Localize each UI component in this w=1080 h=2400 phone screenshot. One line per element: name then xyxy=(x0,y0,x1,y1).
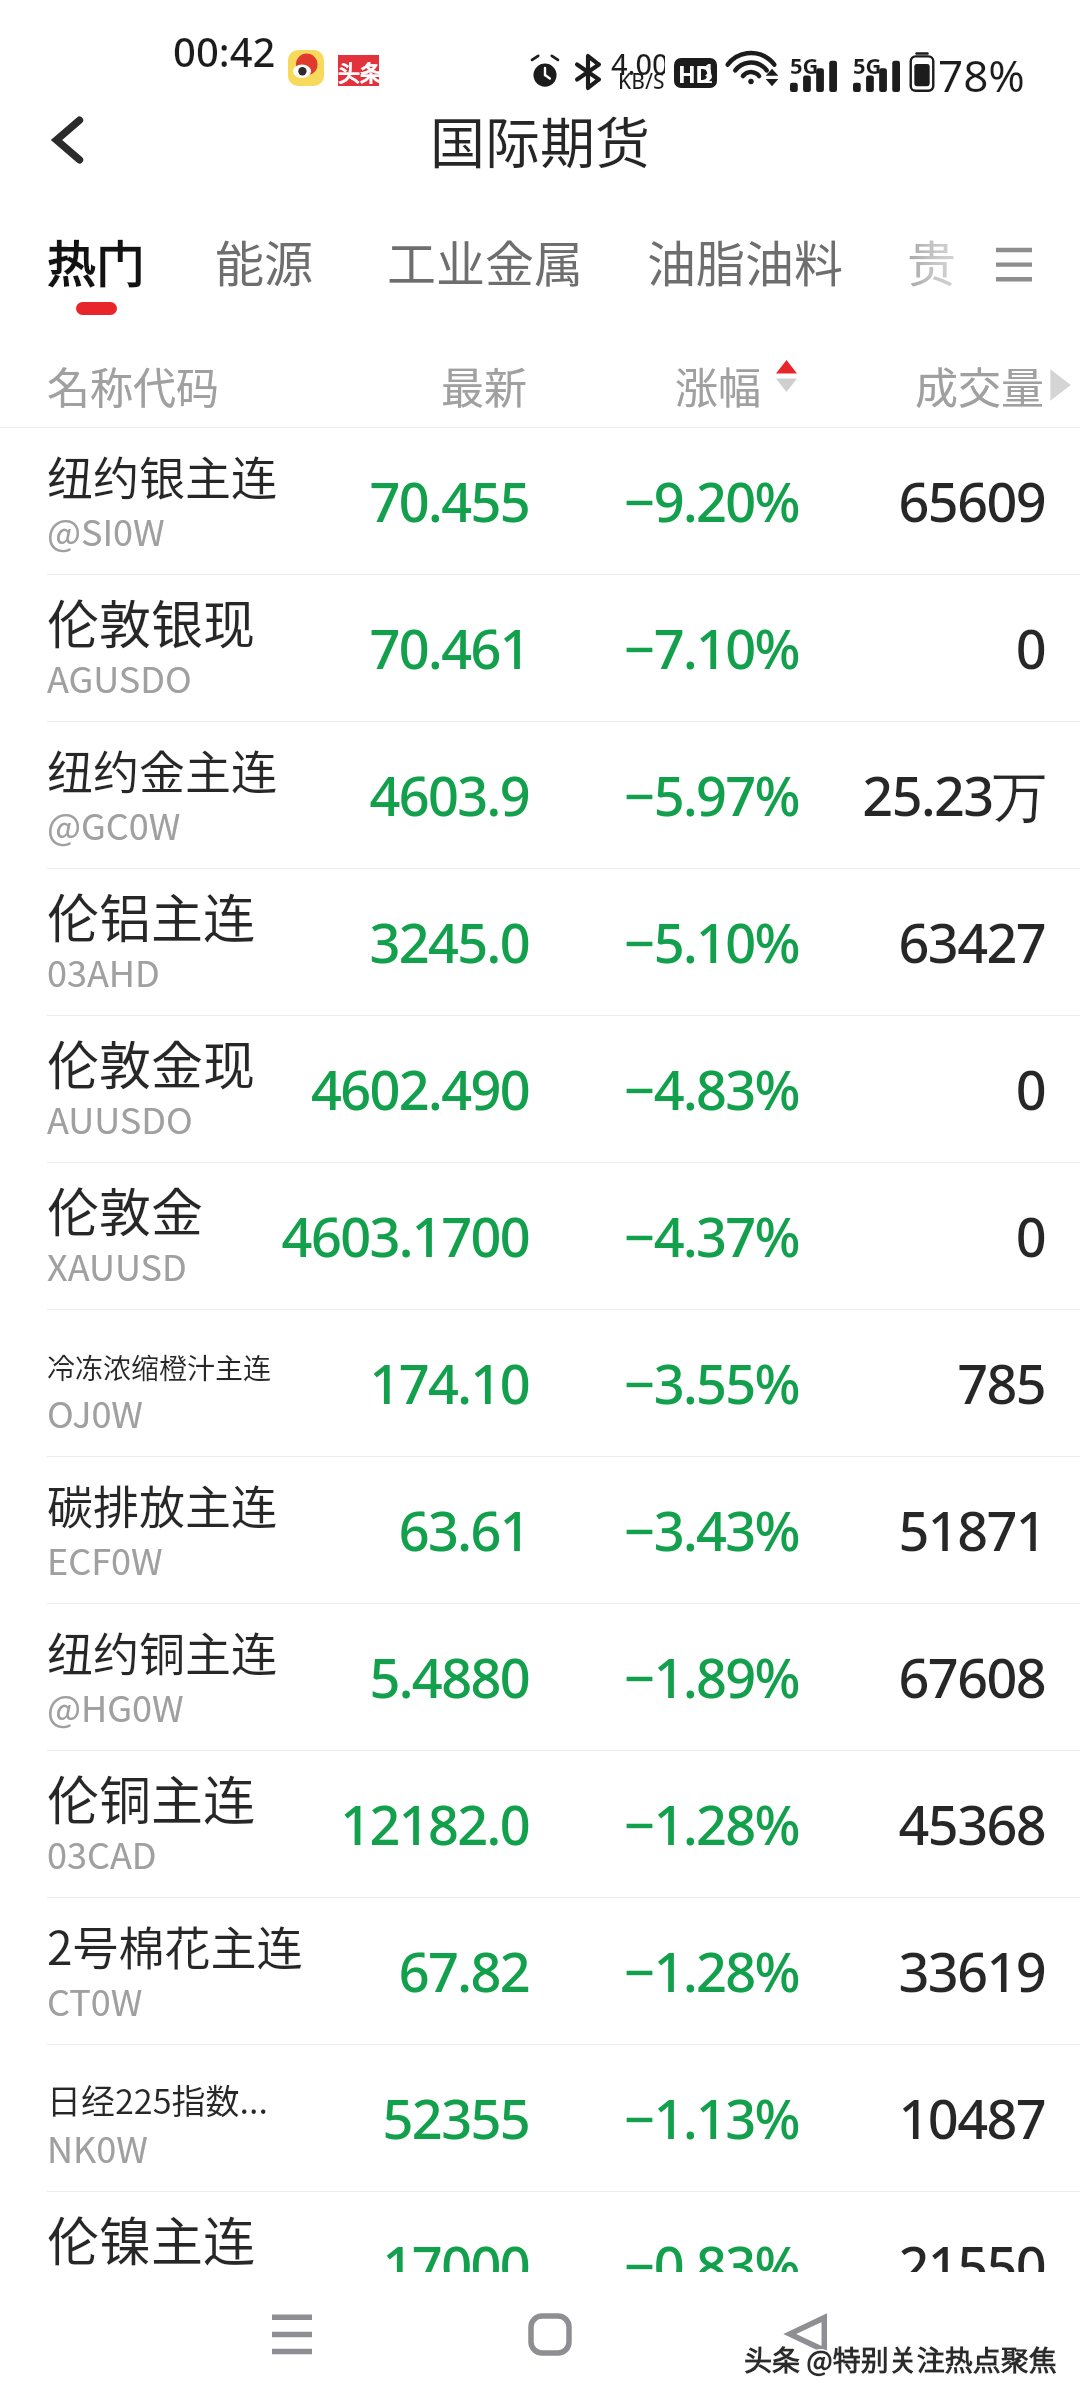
staticText: −3.55% xyxy=(0,1346,799,1420)
staticText: 4.00 xyxy=(611,44,665,83)
button[interactable]: 伦敦银现 xyxy=(0,575,1080,721)
button[interactable]: 能源 xyxy=(215,203,314,302)
staticText: 4603.9 xyxy=(0,758,529,832)
staticText: 70.461 xyxy=(0,611,529,685)
staticText: 174.10 xyxy=(0,1346,529,1420)
staticText: −1.28% xyxy=(0,1934,799,2008)
staticText: 伦铝主连 xyxy=(47,878,256,953)
staticText: CT0W xyxy=(47,1974,143,2026)
button[interactable]: Sort by change xyxy=(776,360,797,392)
staticText: −4.37% xyxy=(0,1199,799,1273)
staticText: 33619 xyxy=(0,1934,1045,2008)
button[interactable]: 伦敦金现 xyxy=(0,1016,1080,1162)
staticText: 52355 xyxy=(0,2081,529,2155)
staticText: 伦铜主连 xyxy=(47,1760,256,1835)
staticText: 碳排放主连 xyxy=(47,1471,277,1538)
staticText: ECF0W xyxy=(47,1533,163,1585)
staticText: 国际期货 xyxy=(430,99,651,179)
staticText: 纽约金主连 xyxy=(47,736,277,803)
button[interactable]: 伦镍主连 xyxy=(0,2192,1080,2338)
staticText: 能源 xyxy=(215,225,314,296)
staticText: 4603.1700 xyxy=(0,1199,529,1273)
staticText: 最新 xyxy=(441,354,527,416)
staticText: 头条 @特别关注热点聚焦 xyxy=(743,2338,1056,2379)
button[interactable]: 日经225指数... xyxy=(0,2045,1080,2191)
button[interactable]: Recents xyxy=(272,2315,312,2353)
staticText: 油脂油料 xyxy=(647,225,844,296)
staticText: −3.43% xyxy=(0,1493,799,1567)
staticText: 头条 @特别关注热点聚焦 xyxy=(745,2339,1058,2380)
button[interactable]: 纽约银主连 xyxy=(0,428,1080,574)
staticText: 00:42 xyxy=(173,24,276,78)
staticText: 伦敦金 xyxy=(47,1172,204,1247)
staticText: −1.89% xyxy=(0,1640,799,1714)
staticText: 贵 xyxy=(907,225,957,296)
staticText: 头条 @特别关注热点聚焦 xyxy=(745,2340,1058,2381)
staticText: 45368 xyxy=(0,1787,1045,1861)
button[interactable]: Menu xyxy=(984,220,1044,280)
staticText: 工业金属 xyxy=(387,225,584,296)
staticText: 2号棉花主连 xyxy=(47,1912,303,1979)
staticText: 21550 xyxy=(0,2228,1045,2302)
staticText: 头条 @特别关注热点聚焦 xyxy=(743,2340,1056,2381)
staticText: 67608 xyxy=(0,1640,1045,1714)
staticText: 日经225指数... xyxy=(47,2075,268,2124)
staticText: 5G xyxy=(853,50,882,80)
staticText: 17000 xyxy=(0,2228,529,2302)
staticText: −1.28% xyxy=(0,1787,799,1861)
staticText: 63427 xyxy=(0,905,1045,979)
staticText: 25.23万 xyxy=(0,758,1045,832)
staticText: 70.455 xyxy=(0,464,529,538)
staticText: 头条 @特别关注热点聚焦 xyxy=(745,2338,1058,2379)
staticText: 伦敦银现 xyxy=(47,584,256,659)
staticText: 65609 xyxy=(0,464,1045,538)
staticText: −4.83% xyxy=(0,1052,799,1126)
button[interactable]: 油脂油料 xyxy=(647,203,844,302)
staticText: 1 xyxy=(705,59,713,77)
staticText: 2 xyxy=(705,69,713,87)
staticText: −7.10% xyxy=(0,611,799,685)
button[interactable]: 工业金属 xyxy=(387,203,584,302)
staticText: 名称代码 xyxy=(47,354,219,416)
staticText: 5G xyxy=(790,50,819,80)
button[interactable]: Back xyxy=(42,114,94,166)
button[interactable]: Home xyxy=(531,2316,569,2353)
staticText: 头条 @特别关注热点聚焦 xyxy=(744,2339,1057,2380)
button[interactable]: 碳排放主连 xyxy=(0,1457,1080,1603)
staticText: @GC0W xyxy=(47,798,181,850)
button[interactable]: 伦敦金 xyxy=(0,1163,1080,1309)
staticText: 冷冻浓缩橙汁主连 xyxy=(47,1347,272,1388)
button[interactable]: 2号棉花主连 xyxy=(0,1898,1080,2044)
button[interactable]: 伦铝主连 xyxy=(0,869,1080,1015)
staticText: HD xyxy=(678,58,713,88)
staticText: 纽约银主连 xyxy=(47,442,277,509)
button[interactable]: 纽约铜主连 xyxy=(0,1604,1080,1750)
staticText: 03AHD xyxy=(47,945,160,997)
staticText: 03CAD xyxy=(47,1827,157,1879)
staticText: 0 xyxy=(0,611,1045,685)
staticText: 0 xyxy=(0,1199,1045,1273)
staticText: 3245.0 xyxy=(0,905,529,979)
staticText: 头条 @特别关注热点聚焦 xyxy=(743,2339,1056,2380)
button[interactable]: 冷冻浓缩橙汁主连 xyxy=(0,1310,1080,1456)
button[interactable]: 贵 xyxy=(907,203,957,302)
staticText: 78% xyxy=(938,45,1025,105)
staticText: AGUSDO xyxy=(47,651,192,703)
staticText: 纽约铜主连 xyxy=(47,1618,277,1685)
staticText: 785 xyxy=(0,1346,1045,1420)
staticText: 0 xyxy=(0,1052,1045,1126)
staticText: 12182.0 xyxy=(0,1787,529,1861)
staticText: 头条 @特别关注热点聚焦 xyxy=(744,2338,1057,2379)
button[interactable]: 热门 xyxy=(47,203,146,315)
button[interactable]: Back xyxy=(789,2317,825,2351)
button[interactable]: 伦铜主连 xyxy=(0,1751,1080,1897)
staticText: 51871 xyxy=(0,1493,1045,1567)
staticText: 伦镍主连 xyxy=(47,2201,256,2276)
button[interactable]: 纽约金主连 xyxy=(0,722,1080,868)
staticText: 5.4880 xyxy=(0,1640,529,1714)
staticText: −0.83% xyxy=(0,2228,799,2302)
staticText: XAUUSD xyxy=(47,1239,187,1291)
staticText: 63.61 xyxy=(0,1493,529,1567)
staticText: 10487 xyxy=(0,2081,1045,2155)
staticText: 涨幅 xyxy=(675,354,761,416)
